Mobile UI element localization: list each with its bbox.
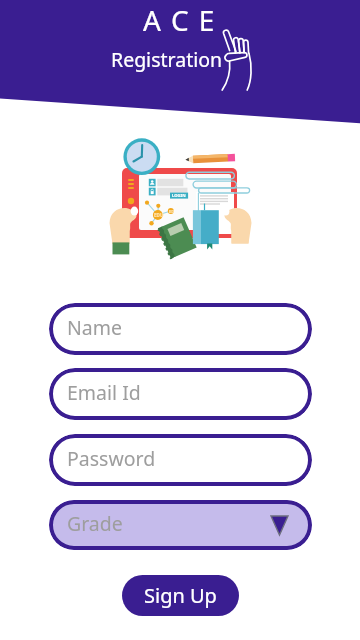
staticText: LOGIN [172, 193, 186, 199]
staticText: Password [67, 445, 156, 472]
staticText: ED [169, 209, 175, 214]
staticText: Registration [111, 46, 223, 73]
button[interactable]: Grade [49, 500, 312, 550]
staticText: EDU [154, 212, 164, 218]
staticText: A C E [143, 1, 216, 39]
staticText: Sign Up [144, 582, 217, 609]
staticText: Email Id [67, 379, 141, 406]
button[interactable]: Password [49, 434, 312, 486]
button[interactable]: Email Id [49, 368, 312, 420]
button[interactable]: Name [49, 303, 312, 355]
button[interactable]: Sign Up [122, 575, 239, 616]
staticText: Name [67, 314, 122, 341]
staticText: Grade [67, 510, 123, 537]
